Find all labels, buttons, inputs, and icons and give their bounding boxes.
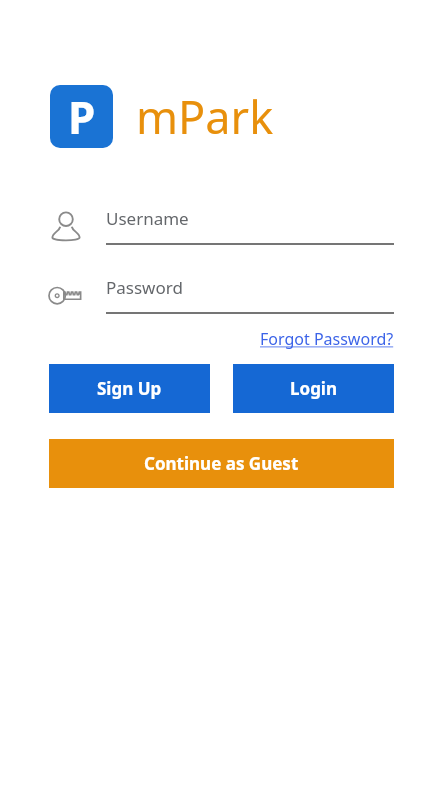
button[interactable]: Username [49, 207, 394, 245]
other: Username [49, 209, 83, 243]
button[interactable]: Password [49, 276, 394, 314]
button[interactable]: Forgot Password? [260, 328, 394, 350]
staticText: Username [106, 207, 189, 230]
staticText: Sign Up [97, 377, 162, 400]
staticText: Forgot Password? [260, 328, 394, 350]
staticText: Password [106, 276, 183, 299]
button[interactable]: Sign Up [49, 364, 210, 413]
staticText: mPark [136, 86, 274, 147]
staticText: Login [290, 377, 338, 400]
staticText: P [68, 87, 96, 147]
button[interactable]: Login [233, 364, 394, 413]
button[interactable]: Continue as Guest [49, 439, 394, 488]
staticText: Continue as Guest [144, 452, 299, 475]
other: Password [49, 278, 83, 312]
